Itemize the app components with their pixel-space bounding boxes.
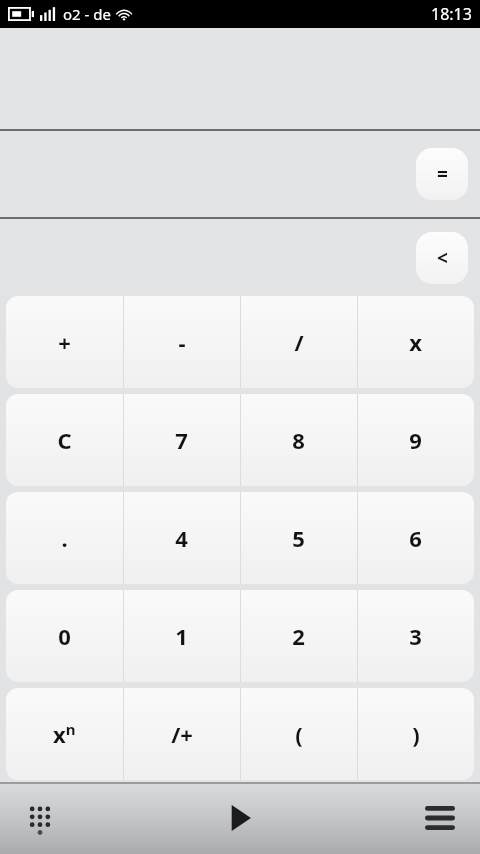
button[interactable]: Run [214,792,266,844]
button[interactable]: . [6,492,123,584]
button[interactable]: 4 [123,492,240,584]
button[interactable]: /+ [123,688,240,780]
staticText: x [409,327,422,357]
button[interactable]: + [6,296,123,388]
staticText: 4 [175,523,188,553]
button[interactable]: 0 [6,590,123,682]
staticText: 3 [409,621,422,651]
button[interactable]: C [6,394,123,486]
button[interactable]: 1 [123,590,240,682]
staticText: C [57,425,72,455]
button[interactable]: Equals [416,148,468,200]
staticText: 2 [292,621,305,651]
staticText: 0 [58,621,71,651]
staticText: = [437,161,448,187]
button[interactable]: 3 [357,590,474,682]
staticText: - [178,327,186,357]
staticText: xn [53,719,76,749]
staticText: ( [295,719,303,749]
staticText: + [58,327,71,357]
staticText: 6 [409,523,422,553]
staticText: . [61,523,68,553]
button[interactable]: 5 [240,492,357,584]
button[interactable]: 2 [240,590,357,682]
staticText: 9 [409,425,422,455]
button[interactable]: 6 [357,492,474,584]
staticText: 1 [175,621,188,651]
button[interactable]: 8 [240,394,357,486]
button[interactable]: Menu [414,792,466,844]
button[interactable]: Dialpad [14,792,66,844]
staticText: 5 [292,523,305,553]
staticText: ) [412,719,420,749]
staticText: 7 [175,425,188,455]
staticText: 18:13 [431,3,472,25]
staticText: < [437,245,448,271]
button[interactable]: x [357,296,474,388]
staticText: o2 - de [63,4,111,24]
staticText: /+ [171,719,193,749]
button[interactable]: ( [240,688,357,780]
button[interactable]: xn [6,688,123,780]
button[interactable]: 7 [123,394,240,486]
button[interactable]: ) [357,688,474,780]
button[interactable]: 9 [357,394,474,486]
button[interactable]: Backspace [416,232,468,284]
staticText: 8 [292,425,305,455]
button[interactable]: - [123,296,240,388]
button[interactable]: / [240,296,357,388]
staticText: / [294,327,304,357]
